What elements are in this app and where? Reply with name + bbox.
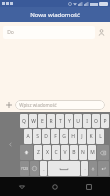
staticText: ?123 [21,167,28,171]
button[interactable]: W [29,114,37,128]
staticText: Wpisz wiadomość [19,102,57,108]
staticText: F [54,133,57,140]
staticText: K [89,133,93,140]
button[interactable]: J [78,129,86,144]
staticText: W [31,118,36,125]
button[interactable]: A [24,129,32,144]
staticText: V [63,149,67,156]
button[interactable]: Do [3,26,95,39]
button[interactable]: Backspace [97,145,109,160]
staticText: S [36,133,39,140]
staticText: I [86,118,88,125]
button[interactable]: R [47,114,55,128]
button[interactable]: S [33,129,41,144]
staticText: P [103,118,107,125]
button[interactable]: . [81,161,88,176]
button[interactable]: K [87,129,95,144]
staticText: G [62,133,66,140]
staticText: O [94,118,98,125]
button[interactable]: Q [20,114,28,128]
staticText: R [49,118,53,125]
button[interactable]: Emotikony [30,161,39,176]
staticText: . [84,166,86,171]
button[interactable]: Mikrofon [89,161,97,176]
button[interactable]: Ekran główny [43,177,67,196]
button[interactable]: Wpisz wiadomość [15,100,105,110]
staticText: J [81,133,83,140]
staticText: D [44,133,48,140]
button[interactable]: Dodaj załącznik [3,99,14,110]
button[interactable]: H [69,129,77,144]
staticText: U [76,118,80,125]
button[interactable]: V [61,145,69,160]
button[interactable]: , [40,161,47,176]
button[interactable]: C [52,145,60,160]
button[interactable]: D [42,129,50,144]
staticText: Q [22,118,26,125]
button[interactable]: Wstecz [10,177,34,196]
button[interactable]: U [74,114,82,128]
button[interactable]: O [92,114,100,128]
button[interactable]: Symbole [20,161,29,176]
staticText: C [54,149,58,156]
button[interactable]: Spacja [48,161,80,176]
button[interactable]: Wybierz kontakt [95,22,107,42]
staticText: Do [7,29,14,36]
button[interactable]: Shift [20,145,33,160]
button[interactable]: N [79,145,87,160]
staticText: H [71,133,75,140]
button[interactable]: Ostatnie aplikacje [77,177,101,196]
staticText: N [81,149,85,156]
staticText: , [43,166,45,171]
staticText: E [41,118,44,125]
button[interactable]: Z [34,145,42,160]
button[interactable]: Enter [98,161,109,176]
staticText: L [99,133,102,140]
button[interactable]: Y [65,114,73,128]
button[interactable]: T [56,114,64,128]
staticText: X [46,149,49,156]
button[interactable]: X [43,145,51,160]
button[interactable]: G [60,129,68,144]
staticText: Y [68,118,71,125]
button[interactable]: E [38,114,46,128]
staticText: B [72,149,76,156]
staticText: A [26,133,30,140]
staticText: Nowa wiadomość [30,11,80,19]
staticText: M [90,149,95,156]
staticText: Z [37,149,40,156]
staticText: T [59,118,62,125]
button[interactable]: F [51,129,59,144]
button[interactable]: P [101,114,109,128]
button[interactable]: M [88,145,96,160]
button[interactable]: I [83,114,91,128]
button[interactable]: L [96,129,104,144]
button[interactable]: B [70,145,78,160]
